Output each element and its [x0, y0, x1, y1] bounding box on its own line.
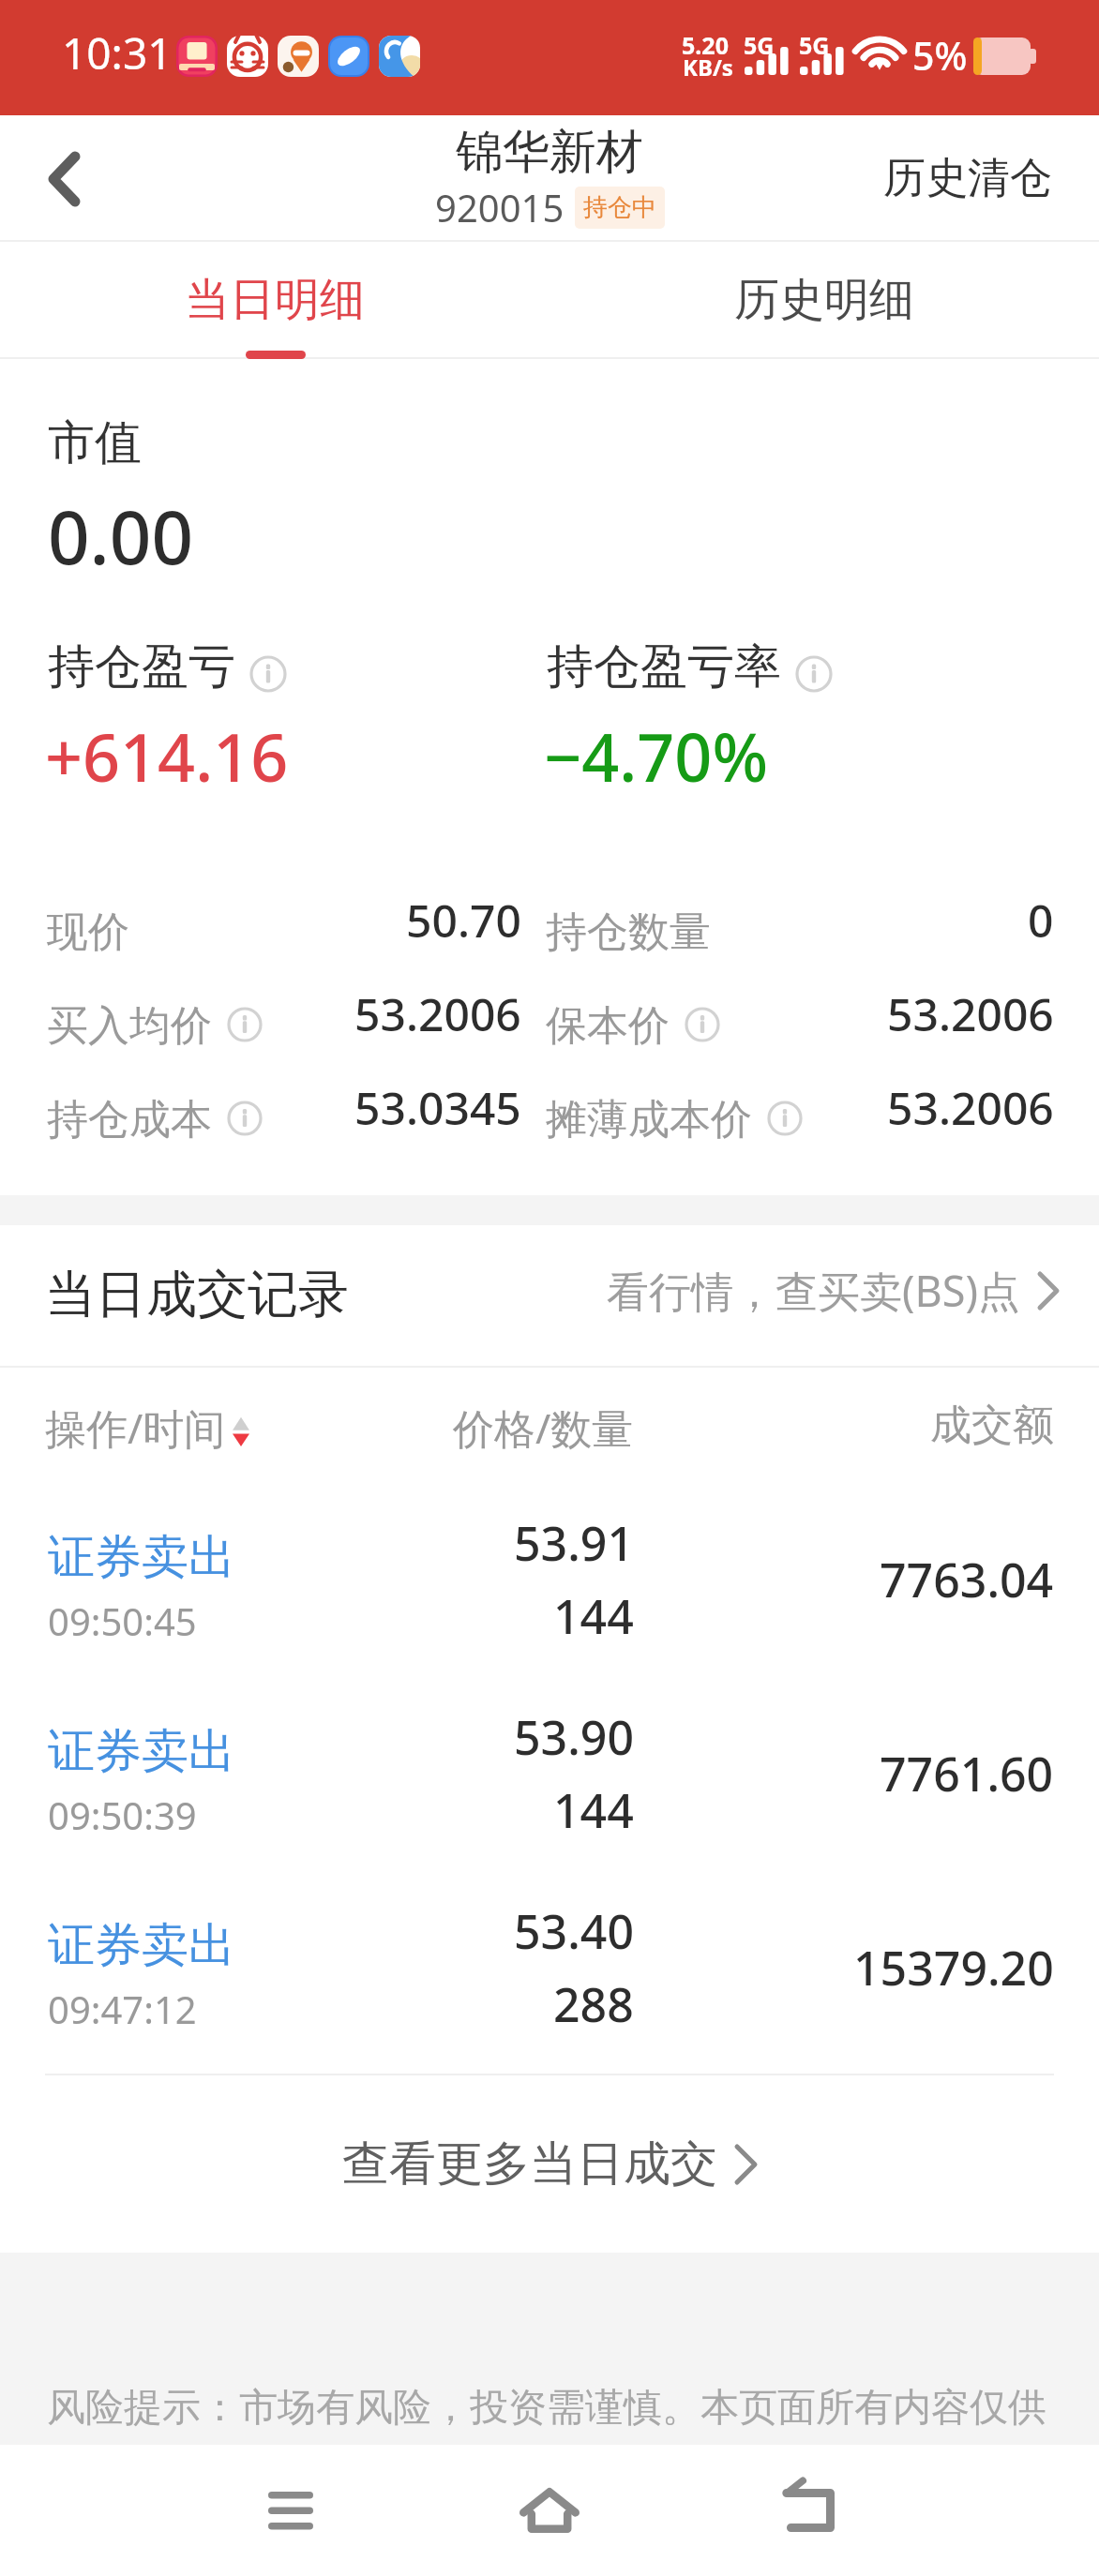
button[interactable]: 当日明细 — [0, 242, 549, 359]
staticText: 看行情，查买卖(BS)点 — [607, 1262, 1020, 1319]
button[interactable]: Recent apps — [188, 2445, 394, 2576]
staticText: 查看更多当日成交 — [342, 2134, 717, 2194]
staticText: 成交额 — [930, 1400, 1054, 1451]
button[interactable]: 查看更多当日成交 — [0, 2075, 1099, 2253]
staticText: 53.2006 — [887, 983, 1054, 1044]
button[interactable]: About holding profit rate — [795, 655, 833, 693]
staticText: 摊薄成本价 — [546, 1094, 752, 1146]
staticText: 920015 — [435, 182, 565, 232]
staticText: 5% — [912, 29, 968, 82]
staticText: 7761.60 — [880, 1742, 1054, 1805]
staticText: 09:50:45 — [48, 1595, 197, 1646]
staticText: 当日成交记录 — [45, 1263, 349, 1326]
button[interactable]: Info about 摊薄成本价 — [767, 1101, 803, 1136]
staticText: 锦华新材 — [456, 123, 643, 182]
staticText: 证券卖出 — [48, 1528, 235, 1587]
staticText: 价格/数量 — [453, 1400, 634, 1456]
staticText: 0 — [1028, 890, 1054, 951]
button[interactable]: Home — [446, 2445, 653, 2576]
staticText: +614.16 — [45, 711, 289, 801]
staticText: 历史清仓 — [883, 152, 1052, 205]
staticText: 持仓盈亏率 — [547, 637, 781, 696]
staticText: 历史明细 — [734, 272, 914, 328]
button[interactable]: Info about 买入均价 — [227, 1007, 263, 1042]
staticText: 09:50:39 — [48, 1790, 197, 1840]
button[interactable]: Sort by time — [232, 1402, 250, 1447]
staticText: 144 — [553, 1584, 634, 1648]
button[interactable]: 看行情，查买卖(BS)点 — [607, 1262, 1099, 1319]
staticText: 5G — [799, 29, 830, 61]
staticText: 7763.04 — [880, 1548, 1054, 1611]
button[interactable]: 历史明细 — [549, 242, 1099, 359]
staticText: 53.2006 — [887, 1077, 1054, 1138]
staticText: 53.40 — [514, 1899, 634, 1963]
staticText: 15379.20 — [853, 1936, 1054, 1999]
staticText: 当日明细 — [185, 272, 365, 328]
staticText: 证券卖出 — [48, 1722, 235, 1781]
staticText: 5.20 — [682, 29, 729, 61]
staticText: 市值 — [48, 413, 142, 472]
button[interactable]: Info about 保本价 — [685, 1007, 720, 1042]
staticText: 风险提示：市场有风险，投资需谨慎。本页面所有内容仅供 — [47, 2384, 1046, 2433]
staticText: 53.90 — [514, 1705, 634, 1769]
staticText: 买入均价 — [47, 1000, 212, 1052]
staticText: −4.70% — [544, 711, 769, 801]
staticText: 证券卖出 — [48, 1916, 235, 1975]
staticText: 50.70 — [406, 890, 521, 951]
button[interactable]: 证券卖出 — [0, 1904, 1099, 2091]
staticText: 操作/时间 — [45, 1400, 226, 1456]
button[interactable]: 证券卖出 — [0, 1516, 1099, 1703]
staticText: 持仓中 — [583, 192, 656, 223]
button[interactable]: Info about 持仓成本 — [227, 1101, 263, 1136]
staticText: 保本价 — [546, 1000, 670, 1052]
button[interactable]: 证券卖出 — [0, 1710, 1099, 1897]
button[interactable]: Back — [8, 115, 120, 242]
staticText: 144 — [553, 1778, 634, 1842]
staticText: KB/s — [683, 52, 733, 82]
staticText: 09:47:12 — [48, 1984, 197, 2034]
staticText: 53.2006 — [354, 983, 521, 1044]
button[interactable]: About holding profit — [249, 655, 287, 693]
staticText: 持仓成本 — [47, 1094, 212, 1146]
staticText: 10:31 — [62, 23, 173, 82]
staticText: 持仓盈亏 — [48, 637, 235, 696]
staticText: 现价 — [47, 906, 129, 958]
staticText: 288 — [553, 1972, 634, 2036]
button[interactable]: Back — [705, 2445, 911, 2576]
staticText: 53.0345 — [354, 1077, 521, 1138]
staticText: 53.91 — [514, 1511, 634, 1575]
button[interactable]: 历史清仓 — [855, 115, 1099, 242]
staticText: 持仓数量 — [546, 906, 711, 958]
staticText: 0.00 — [48, 487, 194, 586]
staticText: 5G — [744, 29, 775, 61]
